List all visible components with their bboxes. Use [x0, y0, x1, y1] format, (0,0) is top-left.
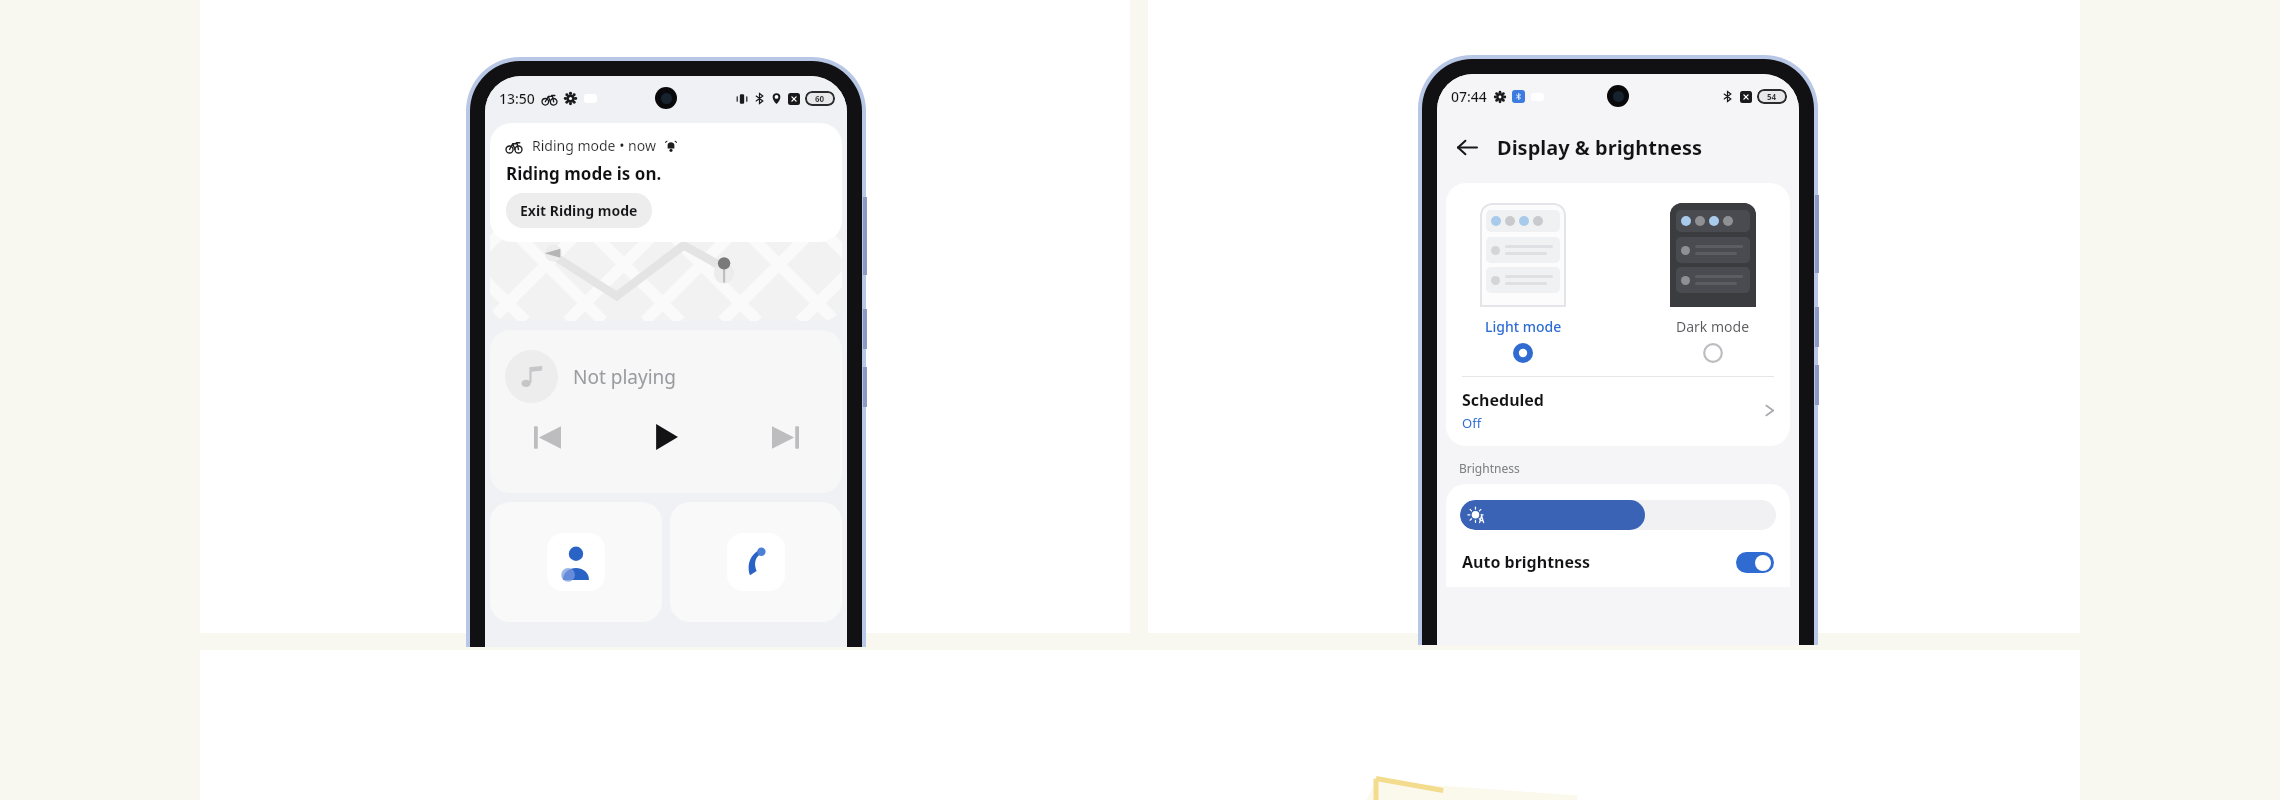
- staticText: Search destination: [539, 185, 688, 208]
- button[interactable]: Back: [1447, 127, 1487, 167]
- staticText: 13:50: [499, 89, 535, 108]
- button[interactable]: Previous track: [530, 420, 564, 454]
- button[interactable]: Dark mode preview: [1670, 203, 1756, 307]
- staticText: Light mode: [1485, 317, 1562, 336]
- staticText: Auto brightness: [1462, 551, 1736, 573]
- staticText: 60: [815, 93, 825, 104]
- staticText: Dark mode: [1676, 317, 1750, 336]
- button[interactable]: Not playing: [490, 330, 842, 493]
- button[interactable]: Auto brightness: [1446, 545, 1790, 587]
- button[interactable]: Exit Riding mode: [506, 193, 652, 228]
- button[interactable]: Search destination: [490, 123, 842, 321]
- staticText: Riding mode • now: [532, 136, 656, 155]
- button[interactable]: Play: [647, 418, 685, 456]
- staticText: Exit Riding mode: [520, 201, 638, 220]
- staticText: Riding mode is on.: [506, 162, 662, 185]
- staticText: 07:44: [1451, 87, 1487, 106]
- staticText: Brightness: [1459, 460, 1520, 476]
- button[interactable]: Dark mode: [1702, 342, 1724, 364]
- button[interactable]: Phone: [670, 502, 842, 622]
- button[interactable]: Next track: [768, 420, 802, 454]
- button[interactable]: Light mode selected: [1512, 342, 1534, 364]
- button[interactable]: Brightness slider: [1460, 500, 1776, 530]
- button[interactable]: Contacts: [490, 502, 662, 622]
- staticText: 54: [1767, 91, 1777, 102]
- staticText: Scheduled: [1462, 389, 1544, 411]
- button[interactable]: Scheduled: [1446, 377, 1790, 446]
- staticText: Display & brightness: [1497, 134, 1702, 161]
- button[interactable]: Light mode preview: [1480, 203, 1566, 307]
- staticText: Off: [1462, 414, 1482, 432]
- staticText: Not playing: [573, 364, 676, 390]
- button[interactable]: Riding mode • now: [490, 123, 842, 242]
